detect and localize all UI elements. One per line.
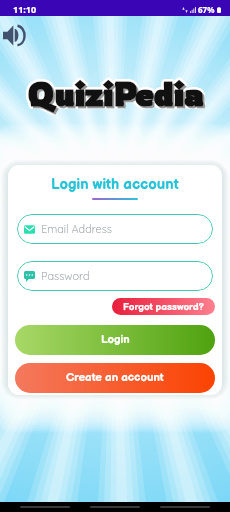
staticText: QuiziPedia (29, 74, 206, 115)
staticText: QuiziPedia (28, 71, 205, 112)
staticText: QuiziPedia (28, 73, 205, 114)
staticText: QuiziPedia (27, 72, 204, 113)
staticText: QuiziPedia (29, 73, 206, 114)
button[interactable]: Password (17, 261, 213, 291)
button[interactable]: Email Address (17, 214, 213, 244)
staticText: QuiziPedia (27, 74, 204, 115)
staticText: Password (41, 269, 90, 283)
staticText: QuiziPedia (28, 74, 205, 115)
staticText: QuiziPedia (26, 73, 203, 114)
staticText: Email Address (41, 222, 112, 236)
staticText: Login (101, 333, 130, 347)
staticText: 11:10 (13, 3, 37, 15)
staticText: QuiziPedia (29, 72, 206, 113)
button[interactable]: Login (15, 325, 215, 355)
staticText: QuiziPedia (28, 75, 205, 116)
staticText: QuiziPedia (27, 71, 204, 112)
staticText: QuiziPedia (26, 74, 203, 115)
staticText: Create an account (66, 371, 164, 385)
staticText: QuiziPedia (29, 75, 206, 116)
staticText: QuiziPedia (27, 73, 204, 114)
staticText: QuiziPedia (25, 72, 202, 113)
staticText: QuiziPedia (27, 75, 204, 116)
staticText: QuiziPedia (25, 73, 202, 114)
staticText: QuiziPedia (25, 74, 202, 115)
button[interactable]: Toggle sound (3, 25, 25, 46)
staticText: 67% (198, 4, 215, 15)
staticText: QuiziPedia (26, 75, 203, 116)
staticText: QuiziPedia (26, 72, 203, 113)
staticText: Login with account (51, 175, 179, 193)
button[interactable]: Create an account (15, 363, 215, 393)
staticText: QuiziPedia (26, 71, 203, 112)
staticText: QuiziPedia (28, 72, 205, 113)
button[interactable]: Forgot password? (112, 298, 215, 315)
staticText: Forgot password? (123, 301, 204, 313)
